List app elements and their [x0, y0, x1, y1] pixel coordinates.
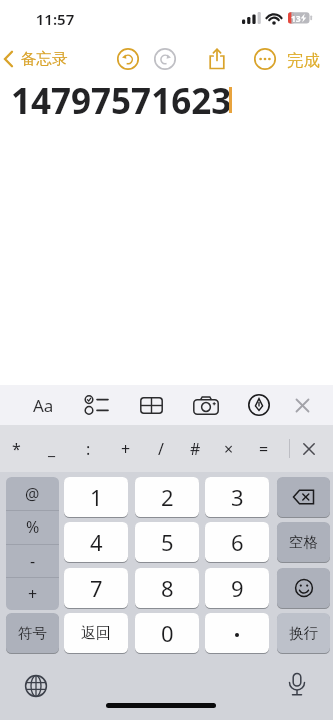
staticText: : — [86, 438, 91, 460]
staticText: 3 — [231, 482, 244, 512]
button[interactable]: 空格 — [277, 522, 330, 562]
button[interactable]: 完成 — [287, 50, 320, 71]
button[interactable]: 换行 — [277, 613, 330, 653]
staticText: 9 — [231, 573, 244, 603]
staticText: = — [259, 438, 269, 460]
button[interactable]: : — [75, 425, 101, 472]
staticText: * — [12, 438, 21, 460]
button[interactable]: + — [113, 425, 139, 472]
button[interactable]: 9 — [205, 568, 269, 608]
staticText: 7 — [90, 573, 103, 603]
staticText: / — [158, 438, 164, 460]
staticText: + — [28, 583, 38, 605]
staticText: 空格 — [289, 533, 318, 551]
button[interactable] — [277, 477, 330, 517]
button[interactable]: % — [6, 510, 59, 543]
staticText: 备忘录 — [21, 49, 68, 69]
button[interactable]: 返回 — [64, 613, 128, 653]
button[interactable] — [286, 672, 308, 700]
button[interactable] — [301, 441, 317, 457]
button[interactable]: 6 — [205, 522, 269, 562]
button[interactable]: 1 — [64, 477, 128, 517]
staticText: _ — [48, 438, 56, 460]
staticText: 4 — [90, 527, 103, 557]
staticText: - — [30, 550, 36, 572]
staticText: 5 — [161, 527, 174, 557]
button[interactable] — [254, 48, 276, 70]
button[interactable]: = — [251, 425, 277, 472]
staticText: + — [121, 438, 131, 460]
button[interactable]: 4 — [64, 522, 128, 562]
button[interactable]: * — [3, 425, 29, 472]
button[interactable]: - — [6, 544, 59, 577]
button[interactable] — [117, 48, 139, 70]
button[interactable] — [205, 613, 269, 653]
staticText: 2 — [161, 482, 174, 512]
staticText: @ — [25, 483, 40, 505]
button[interactable]: 符号 — [6, 613, 59, 653]
button[interactable] — [206, 47, 228, 71]
staticText: 符号 — [18, 624, 47, 642]
staticText: # — [190, 438, 201, 460]
button[interactable]: _ — [39, 425, 65, 472]
button[interactable]: 0 — [135, 613, 199, 653]
staticText: % — [26, 516, 40, 538]
staticText: 换行 — [289, 624, 318, 642]
button[interactable]: 7 — [64, 568, 128, 608]
button[interactable]: 3 — [205, 477, 269, 517]
button[interactable]: 5 — [135, 522, 199, 562]
staticText: 14797571623 — [11, 77, 232, 125]
button[interactable] — [277, 568, 330, 608]
button[interactable]: 2 — [135, 477, 199, 517]
button[interactable] — [294, 397, 311, 414]
staticText: 8 — [161, 573, 174, 603]
button[interactable] — [140, 397, 163, 414]
button[interactable] — [84, 394, 110, 416]
button[interactable] — [154, 48, 176, 70]
button[interactable]: 8 — [135, 568, 199, 608]
staticText: 6 — [231, 527, 244, 557]
button[interactable]: # — [182, 425, 208, 472]
button[interactable]: 备忘录 — [2, 46, 68, 72]
staticText: 13 — [291, 13, 301, 25]
button[interactable]: / — [148, 425, 174, 472]
button[interactable] — [24, 674, 48, 698]
staticText: × — [224, 438, 234, 460]
button[interactable]: Aa — [33, 394, 54, 417]
button[interactable] — [248, 394, 270, 416]
staticText: 0 — [161, 618, 174, 648]
staticText: 返回 — [81, 624, 111, 643]
button[interactable]: × — [216, 425, 242, 472]
button[interactable] — [193, 396, 220, 415]
staticText: 1 — [90, 482, 103, 512]
button[interactable]: @ — [6, 477, 59, 510]
button[interactable]: + — [6, 577, 59, 610]
staticText: 11:57 — [33, 9, 77, 29]
